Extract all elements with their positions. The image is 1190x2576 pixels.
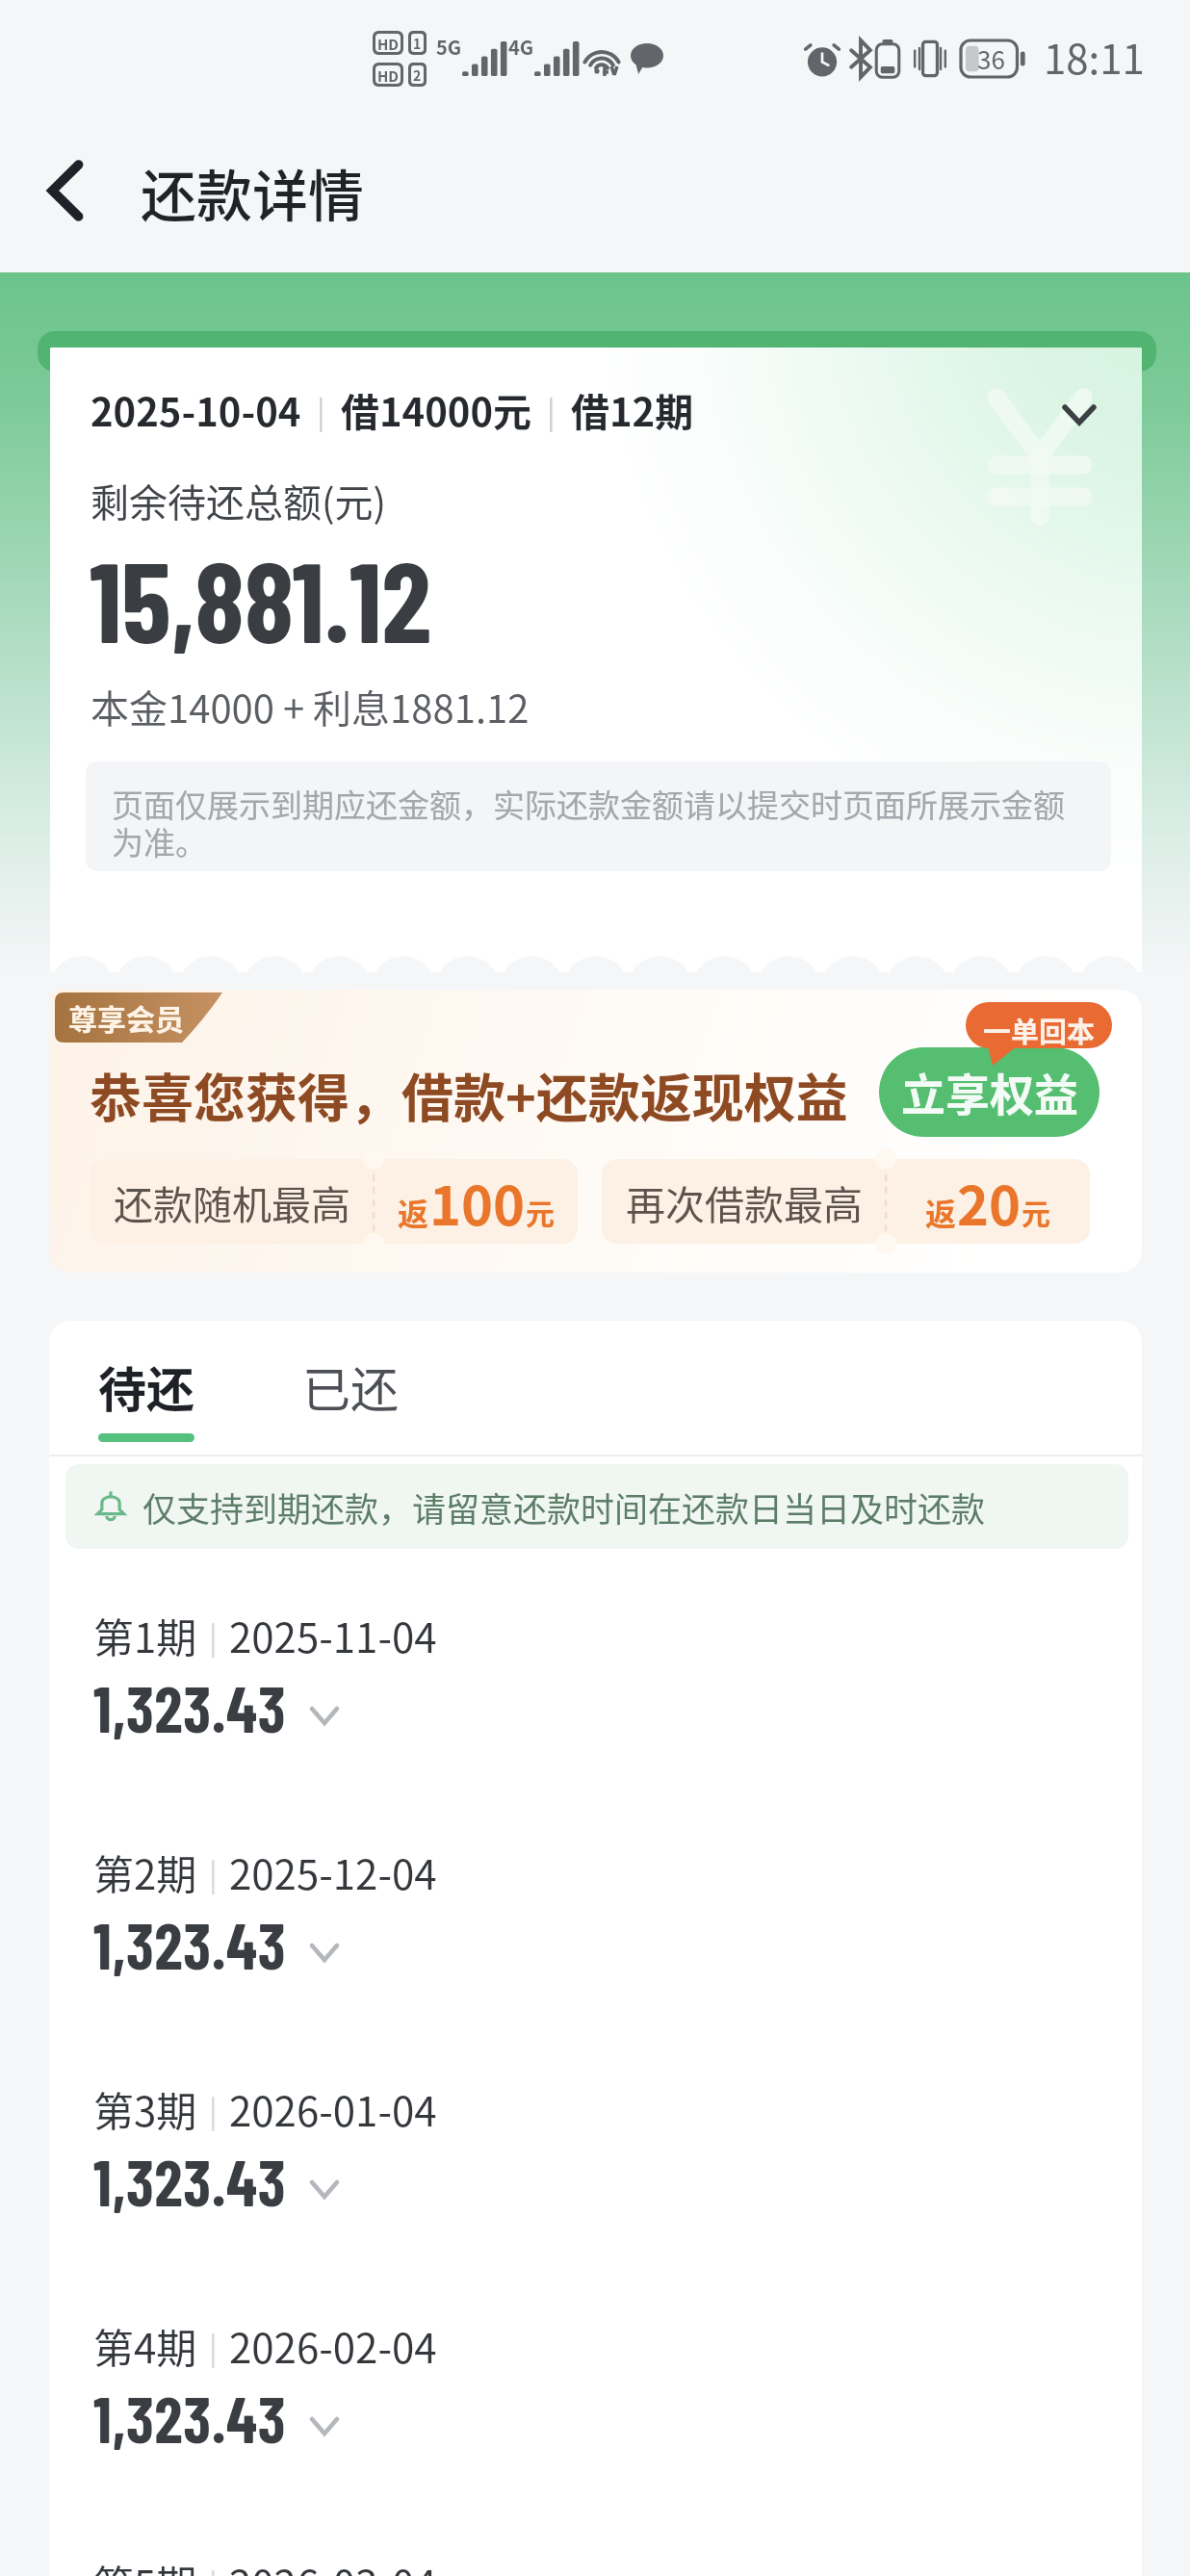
staticText: 剩余待还总额(元) xyxy=(91,473,387,528)
staticText: | xyxy=(209,2087,218,2131)
staticText: 借12期 xyxy=(571,382,694,438)
staticText: 还款详情 xyxy=(141,152,365,233)
staticText: 1,323.43 xyxy=(93,1906,287,1982)
staticText: 5G xyxy=(436,33,462,61)
staticText: 18:11 xyxy=(1044,27,1145,86)
staticText: 1,323.43 xyxy=(93,1669,287,1745)
staticText: 恭喜您获得，借款+还款返现权益 xyxy=(90,1057,848,1132)
staticText: 1 xyxy=(413,34,422,52)
staticText: | xyxy=(547,388,556,432)
staticText: 2026-03-04 xyxy=(229,2553,437,2576)
staticText: 本金14000 + 利息1881.12 xyxy=(91,679,530,734)
staticText: 2025-11-04 xyxy=(229,1606,437,1664)
button[interactable]: 第5期 xyxy=(49,2553,1142,2576)
staticText: 第5期 xyxy=(93,2553,197,2576)
button[interactable]: Back xyxy=(14,142,116,239)
staticText: 元 xyxy=(526,1191,555,1232)
button[interactable]: 第1期 xyxy=(49,1606,1142,1842)
button[interactable]: 第4期 xyxy=(49,2316,1142,2553)
staticText: 还款随机最高 xyxy=(114,1173,350,1230)
staticText: 2026-02-04 xyxy=(229,2316,437,2375)
staticText: 2 xyxy=(413,65,422,84)
staticText: 返 xyxy=(925,1190,957,1234)
staticText: 立享权益 xyxy=(901,1060,1078,1124)
staticText: | xyxy=(209,2561,218,2576)
button[interactable]: 第2期 xyxy=(49,1842,1142,2079)
staticText: | xyxy=(209,2324,218,2368)
staticText: 尊享会员 xyxy=(68,996,184,1038)
staticText: 2026-01-04 xyxy=(229,2079,437,2138)
staticText: 第3期 xyxy=(93,2079,197,2138)
staticText: 再次借款最高 xyxy=(626,1173,863,1230)
staticText: 第4期 xyxy=(93,2316,197,2375)
staticText: 4G xyxy=(508,33,534,61)
staticText: 元 xyxy=(1022,1191,1050,1232)
staticText: 页面仅展示到期应还金额，实际还款金额请以提交时页面所展示金额为准。 xyxy=(112,781,1086,864)
button[interactable]: 立享权益 xyxy=(879,1047,1099,1137)
staticText: 第2期 xyxy=(93,1842,197,1901)
staticText: 待还 xyxy=(98,1352,194,1421)
staticText: 1,323.43 xyxy=(93,2380,287,2456)
staticText: 仅支持到期还款，请留意还款时间在还款日当日及时还款 xyxy=(142,1482,986,1532)
staticText: 一单回本 xyxy=(983,1010,1096,1050)
staticText: 100 xyxy=(429,1163,526,1241)
staticText: 2025-12-04 xyxy=(229,1842,437,1901)
staticText: 1,323.43 xyxy=(93,2143,287,2219)
staticText: 已还 xyxy=(302,1352,399,1421)
button[interactable]: 待还 xyxy=(91,1352,201,1463)
staticText: | xyxy=(317,388,325,432)
staticText: 20 xyxy=(957,1163,1022,1241)
staticText: | xyxy=(209,1613,218,1658)
staticText: HD xyxy=(377,34,400,52)
button[interactable]: 第3期 xyxy=(49,2079,1142,2316)
staticText: HD xyxy=(377,65,400,84)
staticText: 2025-10-04 xyxy=(91,382,301,438)
staticText: 36 xyxy=(977,40,1005,77)
button[interactable]: Expand details xyxy=(1031,365,1127,461)
staticText: 第1期 xyxy=(93,1606,197,1664)
staticText: 借14000元 xyxy=(341,382,531,438)
button[interactable]: 已还 xyxy=(296,1352,405,1429)
staticText: 15,881.12 xyxy=(90,530,431,665)
staticText: 返 xyxy=(398,1190,429,1234)
staticText: | xyxy=(209,1850,218,1894)
